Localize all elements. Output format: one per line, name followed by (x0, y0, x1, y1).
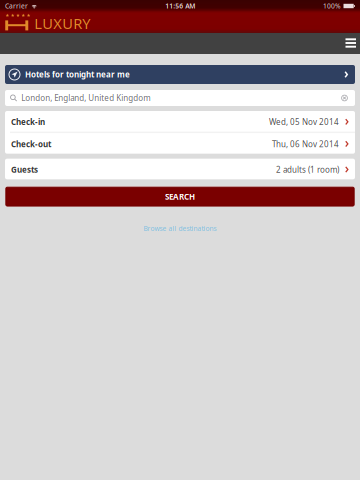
button[interactable]: Hotels for tonight near me (5, 65, 355, 84)
button[interactable]: Check-in (5, 111, 355, 132)
staticText: Thu, 06 Nov 2014 (272, 139, 339, 149)
staticText: 11:56 AM (165, 2, 195, 10)
button[interactable]: Browse all destinations (123, 207, 236, 239)
button[interactable]: Menu (335, 33, 360, 54)
staticText: Check-out (11, 139, 51, 149)
staticText: Check-in (11, 117, 45, 127)
staticText: SEARCH (165, 191, 195, 202)
staticText: Browse all destinations (143, 224, 216, 233)
staticText: Wed, 05 Nov 2014 (269, 117, 339, 127)
button[interactable]: Guests (5, 159, 355, 179)
staticText: London, England, United Kingdom (21, 93, 150, 103)
button[interactable]: London, England, United Kingdom (5, 90, 355, 106)
staticText: LUXURY (34, 13, 90, 33)
button[interactable]: Check-out (5, 133, 355, 154)
staticText: 2 adults (1 room) (276, 164, 339, 175)
staticText: 100% (323, 2, 341, 10)
staticText: Guests (11, 164, 38, 175)
staticText: Carrier (5, 2, 28, 10)
button[interactable]: SEARCH (5, 186, 355, 207)
staticText: Hotels for tonight near me (25, 69, 130, 80)
